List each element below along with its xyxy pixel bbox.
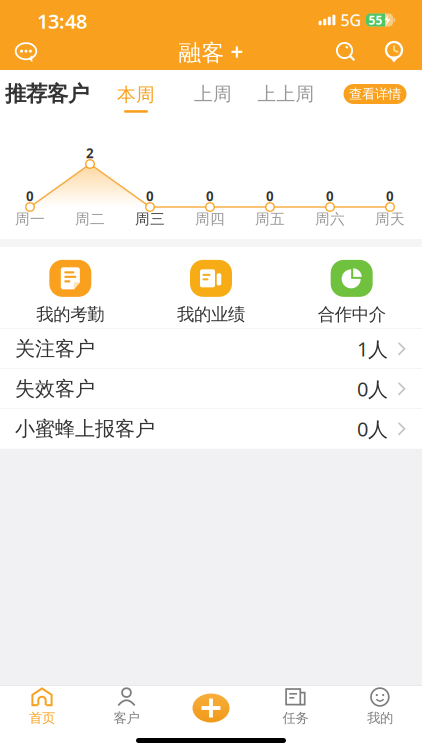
staticText: 0人 [357, 415, 388, 442]
button[interactable]: 上周 [194, 82, 232, 105]
staticText: 5G [340, 9, 361, 31]
button[interactable]: 我的考勤 [0, 260, 141, 325]
button[interactable]: 客户 [84, 686, 168, 728]
staticText: 周天 [375, 210, 405, 228]
staticText: 13:48 [37, 8, 87, 34]
staticText: 本周 [117, 83, 155, 106]
button[interactable]: 首页 [0, 686, 84, 728]
staticText: 周六 [315, 210, 345, 228]
staticText: 周二 [75, 210, 105, 228]
button[interactable]: 关注客户 [0, 329, 422, 369]
staticText: 我的考勤 [36, 304, 104, 325]
staticText: 0 [146, 187, 154, 205]
staticText: 0 [386, 187, 394, 205]
staticText: 合作中介 [318, 304, 386, 325]
button[interactable]: 新增 [193, 690, 229, 726]
staticText: 我的 [367, 710, 393, 726]
staticText: 我的业绩 [177, 304, 245, 325]
staticText: 周三 [135, 210, 165, 228]
staticText: 查看详情 [349, 86, 401, 102]
staticText: 周一 [15, 210, 45, 228]
staticText: 0人 [357, 375, 388, 402]
staticText: 关注客户 [15, 336, 95, 361]
button[interactable]: 任务 [253, 686, 337, 728]
button[interactable]: 我的业绩 [141, 260, 281, 325]
staticText: 客户 [113, 710, 139, 726]
staticText: 0 [266, 187, 274, 205]
button[interactable]: 查看详情 [343, 84, 406, 104]
button[interactable]: 历史 [381, 39, 407, 65]
staticText: 0 [206, 187, 214, 205]
button[interactable]: 小蜜蜂上报客户 [0, 409, 422, 449]
button[interactable]: 上上周 [257, 82, 314, 105]
staticText: 上周 [194, 82, 232, 105]
staticText: 周五 [255, 210, 285, 228]
staticText: 1人 [357, 335, 388, 362]
button[interactable]: 失效客户 [0, 369, 422, 409]
staticText: 推荐客户 [5, 81, 89, 107]
button[interactable]: 本周 [117, 83, 155, 113]
staticText: 任务 [282, 710, 308, 726]
staticText: 首页 [29, 710, 55, 726]
staticText: 失效客户 [15, 376, 95, 401]
button[interactable]: 消息 [11, 38, 41, 66]
staticText: 0 [26, 187, 34, 205]
staticText: 融客 + [178, 37, 243, 67]
staticText: 小蜜蜂上报客户 [15, 416, 155, 441]
button[interactable]: 搜索 [333, 39, 359, 65]
staticText: 55 [368, 12, 382, 28]
staticText: 上上周 [257, 82, 314, 105]
button[interactable]: 合作中介 [281, 260, 422, 325]
button[interactable]: 我的 [338, 686, 422, 728]
staticText: 周四 [195, 210, 225, 228]
staticText: 2 [86, 144, 94, 162]
staticText: 0 [326, 187, 334, 205]
